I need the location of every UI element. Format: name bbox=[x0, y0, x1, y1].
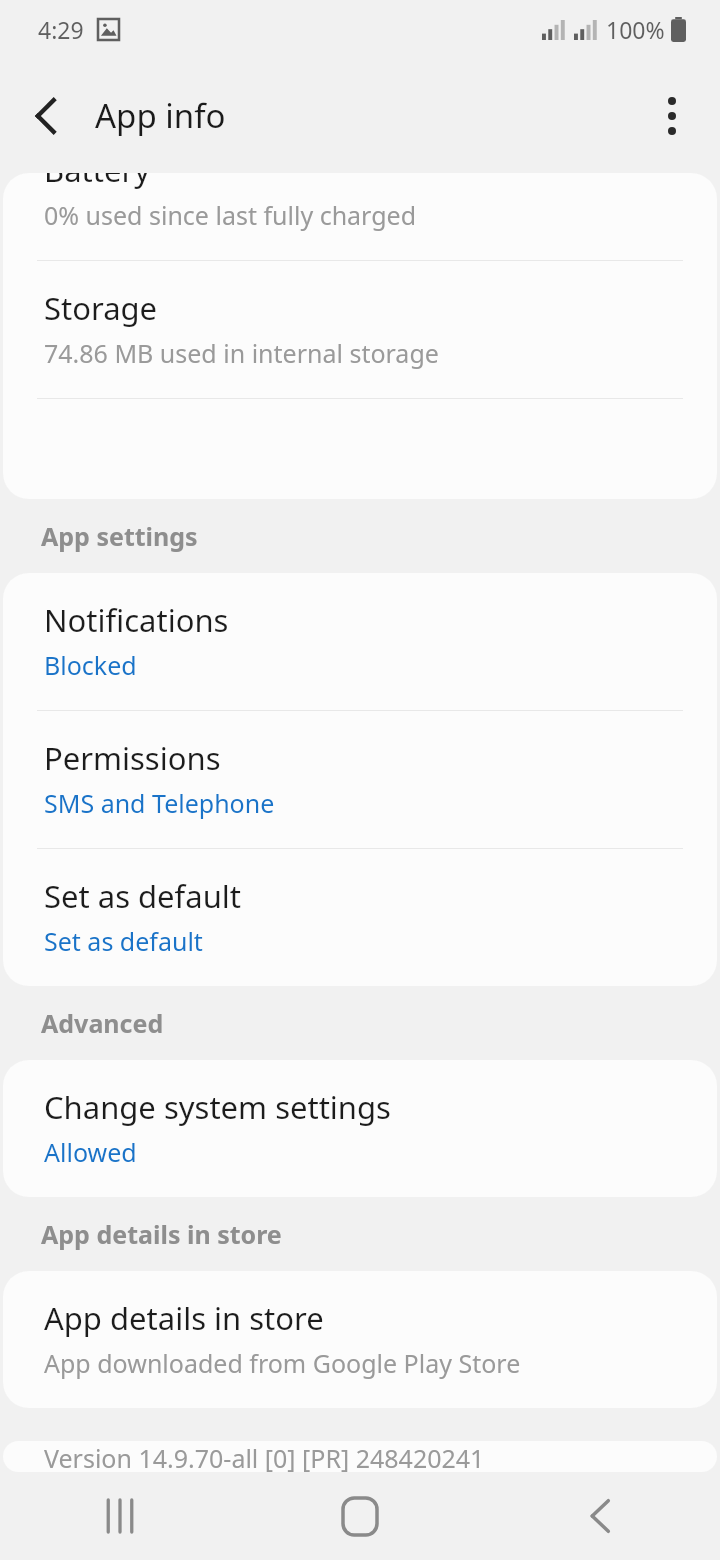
staticText: Change system settings bbox=[44, 1086, 391, 1128]
button[interactable]: Back bbox=[480, 1472, 720, 1560]
button[interactable]: Battery bbox=[3, 173, 717, 260]
staticText: Battery bbox=[44, 173, 151, 191]
staticText: Set as default bbox=[44, 924, 203, 958]
staticText: 100% bbox=[606, 14, 665, 45]
staticText: 74.86 MB used in internal storage bbox=[44, 336, 439, 370]
staticText: Storage bbox=[44, 287, 158, 329]
staticText: Notifications bbox=[44, 599, 229, 641]
button[interactable]: More options bbox=[650, 79, 694, 153]
staticText: App downloaded from Google Play Store bbox=[44, 1346, 521, 1380]
button[interactable]: App details in store bbox=[3, 1271, 717, 1408]
staticText: SMS and Telephone bbox=[44, 786, 275, 820]
button[interactable]: Change system settings bbox=[3, 1060, 717, 1197]
button[interactable]: Storage bbox=[3, 261, 717, 398]
staticText: Version 14.9.70-all [0] [PR] 248420241 bbox=[44, 1441, 485, 1472]
staticText: App details in store bbox=[41, 1217, 282, 1251]
staticText: 0% used since last fully charged bbox=[44, 198, 417, 232]
staticText: Allowed bbox=[44, 1135, 137, 1169]
staticText: Blocked bbox=[44, 648, 137, 682]
staticText: App details in store bbox=[44, 1297, 324, 1339]
staticText: 4:29 bbox=[38, 14, 84, 45]
staticText: App info bbox=[95, 93, 226, 138]
button[interactable]: Back bbox=[20, 84, 72, 148]
button[interactable]: Permissions bbox=[3, 711, 717, 848]
staticText: Set as default bbox=[44, 875, 242, 917]
button[interactable]: Version 14.9.70-all [0] [PR] 248420241 bbox=[3, 1441, 717, 1472]
staticText: App settings bbox=[41, 519, 198, 553]
staticText: Permissions bbox=[44, 737, 221, 779]
button[interactable]: Recent apps bbox=[0, 1472, 240, 1560]
staticText: Advanced bbox=[41, 1006, 164, 1040]
button[interactable]: Home bbox=[240, 1472, 480, 1560]
button[interactable]: Set as default bbox=[3, 849, 717, 986]
button[interactable]: Notifications bbox=[3, 573, 717, 710]
